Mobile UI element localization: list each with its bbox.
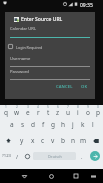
button[interactable]: f — [38, 118, 48, 131]
staticText: . — [81, 153, 83, 160]
button[interactable]: Enter — [90, 151, 100, 161]
staticText: q — [4, 108, 8, 117]
staticText: 09:35 — [80, 2, 93, 9]
staticText: s — [21, 120, 25, 129]
button[interactable]: 4 — [33, 105, 43, 118]
staticText: / — [16, 153, 19, 160]
button[interactable]: s — [17, 118, 28, 131]
staticText: 5 — [47, 105, 49, 109]
button[interactable]: Switch keyboard — [86, 169, 100, 183]
staticText: ?123 — [2, 153, 12, 159]
button[interactable]: b — [58, 134, 68, 147]
staticText: CANCEL — [56, 84, 73, 90]
button[interactable]: 6 — [53, 105, 63, 118]
staticText: v — [51, 136, 55, 145]
button[interactable]: a — [6, 118, 17, 131]
button[interactable]: j — [68, 118, 78, 131]
staticText: y — [20, 136, 24, 145]
staticText: r — [37, 108, 40, 117]
staticText: Username — [10, 56, 31, 62]
button[interactable]: / — [13, 149, 22, 163]
button[interactable]: . — [77, 149, 87, 163]
button[interactable]: 3 — [22, 105, 33, 118]
button[interactable]: 1 — [0, 105, 11, 118]
staticText: j — [72, 120, 74, 129]
staticText: k — [81, 120, 85, 129]
staticText: z — [56, 108, 60, 117]
button[interactable]: 0 — [93, 105, 103, 118]
staticText: a — [10, 120, 14, 129]
staticText: d — [31, 120, 35, 129]
staticText: Password — [10, 69, 29, 75]
staticText: g — [51, 120, 55, 129]
staticText: OK — [81, 84, 88, 90]
button[interactable]: 2 — [11, 105, 22, 118]
button[interactable]: v — [48, 134, 58, 147]
staticText: 8 — [77, 105, 79, 109]
button[interactable]: Emoji — [22, 149, 32, 163]
staticText: 4 — [37, 105, 39, 109]
button[interactable]: CANCEL — [54, 82, 75, 92]
button[interactable]: c — [38, 134, 48, 147]
button[interactable]: g — [48, 118, 58, 131]
staticText: 6 — [57, 105, 59, 109]
staticText: w — [14, 108, 20, 117]
staticText: Enter Source URL — [21, 16, 63, 23]
button[interactable]: n — [68, 134, 78, 147]
staticText: m — [80, 136, 87, 145]
staticText: p — [96, 108, 100, 117]
button[interactable]: 7 — [63, 105, 73, 118]
button[interactable]: y — [16, 134, 27, 147]
button[interactable]: Back — [16, 169, 32, 183]
button[interactable]: Backspace — [88, 134, 103, 147]
staticText: 0 — [97, 105, 99, 109]
staticText: i — [77, 108, 79, 117]
button[interactable]: 9 — [83, 105, 93, 118]
button[interactable]: 5 — [43, 105, 53, 118]
button[interactable]: ?123 — [0, 149, 13, 163]
button[interactable]: Home — [43, 169, 59, 183]
staticText: c — [41, 136, 45, 145]
button[interactable]: Shift — [0, 134, 16, 147]
staticText: e — [26, 108, 30, 117]
staticText: 9 — [87, 105, 89, 109]
staticText: x — [31, 136, 35, 145]
staticText: o — [86, 108, 90, 117]
button[interactable]: d — [28, 118, 38, 131]
staticText: Login Required — [16, 45, 43, 50]
button[interactable]: 8 — [73, 105, 83, 118]
staticText: b — [61, 136, 65, 145]
staticText: 2 — [16, 105, 18, 109]
button[interactable]: OK — [79, 82, 90, 92]
staticText: 7 — [67, 105, 69, 109]
staticText: f — [42, 120, 45, 129]
staticText: h — [61, 120, 66, 129]
button[interactable]: x — [27, 134, 38, 147]
button[interactable]: m — [78, 134, 88, 147]
staticText: l — [92, 120, 94, 129]
button[interactable]: k — [78, 118, 88, 131]
staticText: n — [71, 136, 76, 145]
staticText: Deutsch — [48, 154, 62, 159]
staticText: 1 — [5, 105, 7, 109]
staticText: Calendar URL — [10, 26, 37, 32]
button[interactable]: h — [58, 118, 68, 131]
staticText: t — [47, 108, 50, 117]
staticText: u — [66, 108, 71, 117]
button[interactable]: Deutsch — [33, 152, 76, 160]
staticText: 3 — [27, 105, 29, 109]
button[interactable]: l — [88, 118, 98, 131]
button[interactable]: Recent apps — [68, 169, 84, 183]
